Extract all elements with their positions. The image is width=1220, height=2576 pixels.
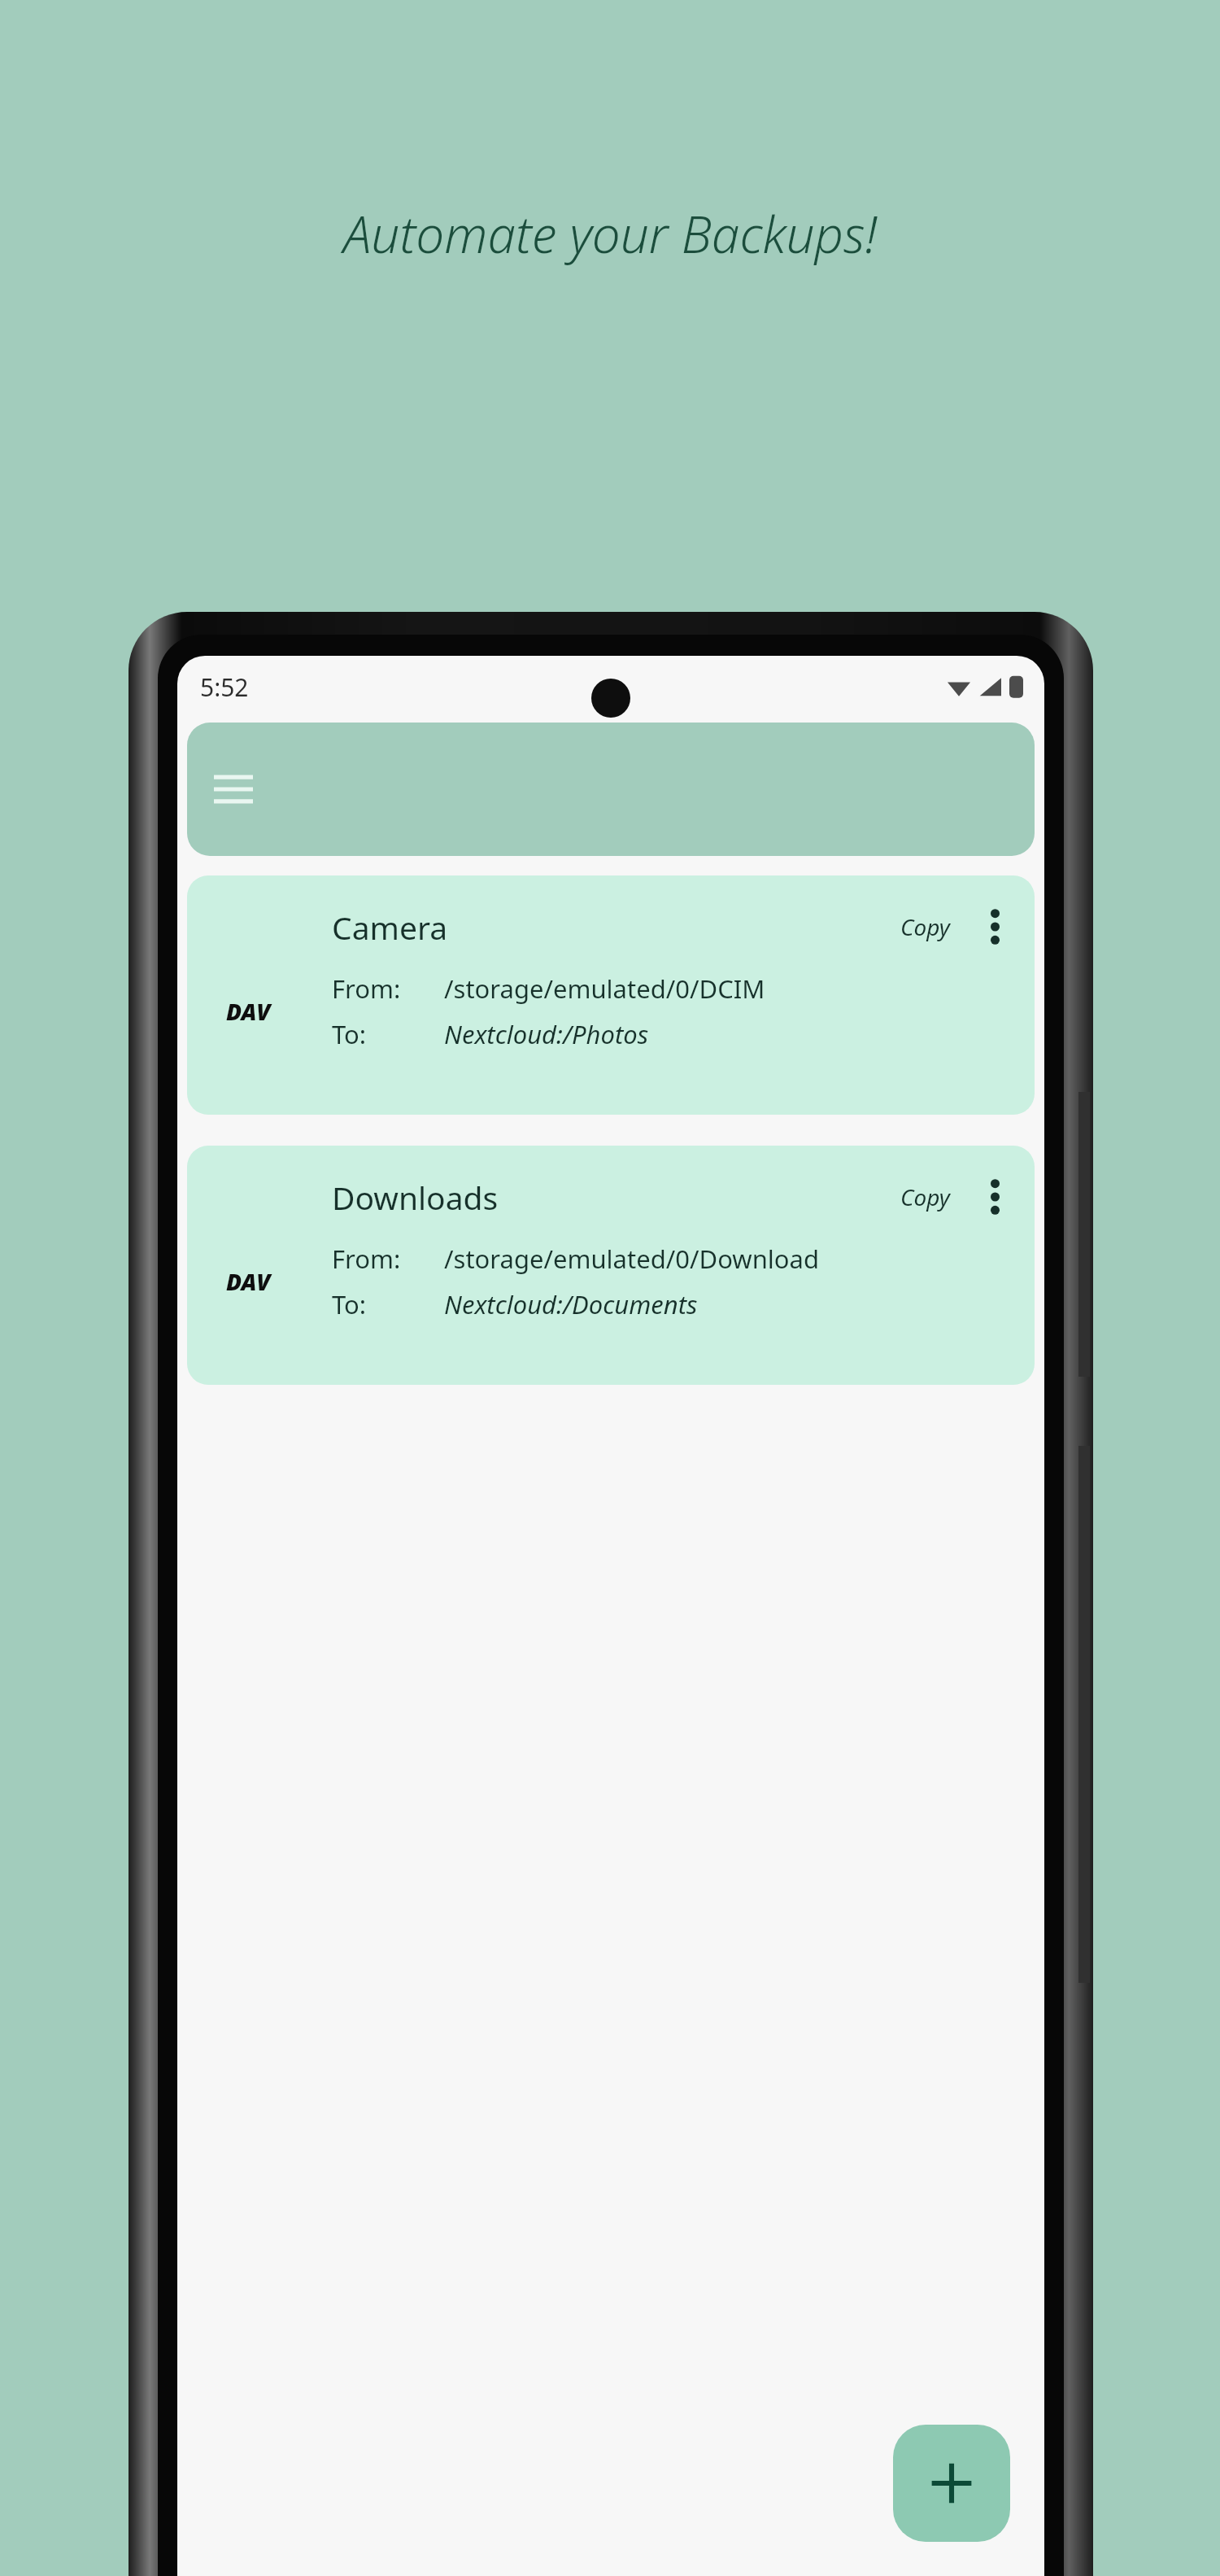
button[interactable]: DAV <box>187 1146 1035 1385</box>
staticText: /storage/emulated/0/Download <box>444 1242 820 1276</box>
staticText: To: <box>332 1017 444 1051</box>
staticText: From: <box>332 1242 444 1276</box>
staticText: Downloads <box>332 1176 900 1219</box>
button[interactable]: More options <box>973 905 1017 949</box>
staticText: DAV <box>226 996 271 1027</box>
staticText: From: <box>332 971 444 1006</box>
button[interactable]: DAV <box>187 875 1035 1115</box>
staticText: DAV <box>226 1266 271 1297</box>
staticText: Nextcloud:/Photos <box>444 1017 649 1051</box>
staticText: To: <box>332 1287 444 1321</box>
staticText: /storage/emulated/0/DCIM <box>444 971 765 1006</box>
staticText: Copy <box>900 911 950 942</box>
staticText: Automate your Backups! <box>0 199 1220 268</box>
button[interactable]: Add backup <box>893 2425 1010 2542</box>
button[interactable]: Open navigation menu <box>203 759 264 819</box>
staticText: Camera <box>332 906 900 949</box>
staticText: 5:52 <box>200 670 249 704</box>
button[interactable]: More options <box>973 1175 1017 1219</box>
staticText: Nextcloud:/Documents <box>444 1287 698 1321</box>
button[interactable]: Open navigation menu <box>187 723 1035 856</box>
staticText: Copy <box>900 1181 950 1212</box>
